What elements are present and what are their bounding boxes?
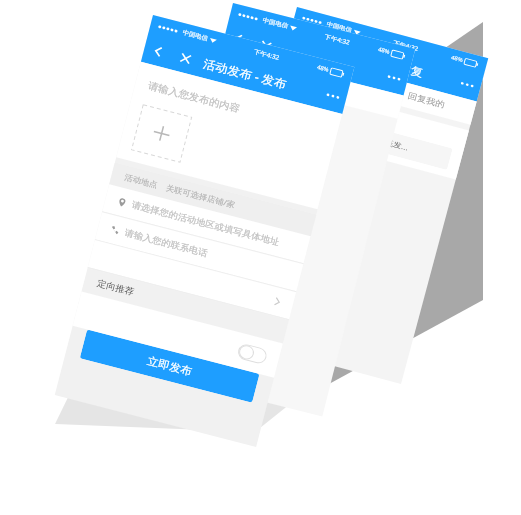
button[interactable]: 回复我的 (375, 76, 477, 125)
staticText: 48% (450, 54, 464, 64)
button[interactable]: Close (249, 29, 282, 61)
staticText: 下午4:32 (392, 38, 419, 53)
button[interactable]: More options (316, 80, 349, 112)
staticText: 活动地点 关联可选择店铺/家 (123, 171, 237, 211)
button[interactable]: 我的评论 (279, 50, 380, 99)
button[interactable]: 立即发布 (80, 329, 259, 403)
button[interactable]: 请输入您发布的内容 (131, 62, 342, 153)
button[interactable]: Back (222, 23, 255, 54)
staticText: 2018-05-10 (284, 89, 325, 107)
staticText: 立即发布 (146, 354, 193, 378)
staticText: 下午4:32 (324, 32, 351, 46)
button[interactable]: 活动地点 关联可选择店铺/家 (109, 163, 316, 236)
staticText: 中国电信 (182, 29, 209, 42)
button[interactable] (88, 240, 296, 319)
staticText: 中国电信 (326, 20, 353, 34)
button[interactable]: Back (141, 35, 175, 67)
staticText: 48% (316, 63, 330, 74)
button[interactable]: More options (450, 69, 483, 100)
staticText: 我的评论 (310, 65, 349, 84)
button[interactable]: 2018-05-10 (264, 79, 469, 180)
button[interactable]: 请输入您的联系电话 (95, 212, 303, 291)
staticText: 个三字小强很喜欢了致富，既发... (285, 110, 410, 153)
staticText: 请输入您发布的内容 (147, 79, 242, 115)
staticText: 下午4:32 (253, 47, 280, 62)
staticText: 中国电信 (262, 16, 289, 30)
staticText: 定向推荐 (96, 278, 135, 298)
button[interactable]: Back (286, 25, 319, 56)
staticText: 48% (377, 46, 391, 56)
staticText: 请输入您的联系电话 (123, 227, 209, 259)
staticText: 请选择您的活动地区或填写具体地址 (130, 199, 280, 248)
button[interactable] (73, 291, 283, 378)
button[interactable]: Close (168, 42, 202, 74)
button[interactable]: 请选择您的活动地区或填写具体地址 (102, 184, 311, 263)
staticText: 我的评论/回复 (344, 45, 425, 80)
button[interactable]: Add photo (132, 105, 192, 162)
staticText: 活动发布 - 发布 (202, 55, 289, 92)
button[interactable]: More options (377, 62, 410, 94)
staticText: 回复我的 (406, 90, 446, 110)
